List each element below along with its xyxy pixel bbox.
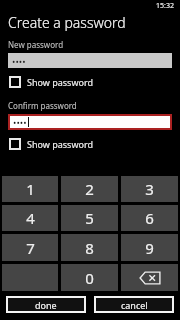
staticText: 15:32 <box>156 1 174 11</box>
staticText: 2 <box>85 179 94 199</box>
button[interactable]: 2 <box>61 176 118 202</box>
staticText: •••• <box>12 55 26 67</box>
staticText: 3 <box>145 179 154 199</box>
staticText: Show password <box>27 76 93 88</box>
button[interactable]: 9 <box>121 234 178 261</box>
staticText: 5 <box>85 208 94 228</box>
button[interactable]: 6 <box>121 205 178 231</box>
staticText: 4 <box>26 208 35 228</box>
button[interactable]: Backspace <box>121 264 178 291</box>
button[interactable]: 8 <box>61 234 118 261</box>
button[interactable]: 5 <box>61 205 118 231</box>
button[interactable]: Show password <box>0 134 180 154</box>
staticText: done <box>35 299 57 311</box>
button[interactable]: 1 <box>2 176 58 202</box>
staticText: 1 <box>26 179 35 199</box>
staticText: New password <box>8 39 64 50</box>
staticText: Show password <box>27 138 93 150</box>
staticText: 8 <box>85 238 94 258</box>
button[interactable]: done <box>6 296 86 313</box>
staticText: Create a password <box>8 13 126 32</box>
button[interactable]: 4 <box>2 205 58 231</box>
staticText: 0 <box>85 268 94 288</box>
button[interactable]: Show password <box>0 72 180 92</box>
staticText: cancel <box>121 299 148 311</box>
button[interactable]: 3 <box>121 176 178 202</box>
button[interactable]: 7 <box>2 234 58 261</box>
staticText: Confirm password <box>8 100 77 111</box>
staticText: 7 <box>26 238 35 258</box>
button[interactable]: 0 <box>61 264 118 291</box>
staticText: 9 <box>145 238 154 258</box>
staticText: •••• <box>13 116 27 128</box>
button[interactable]: •••• <box>8 114 172 130</box>
button[interactable]: •••• <box>8 53 172 68</box>
button[interactable]: cancel <box>94 296 174 313</box>
staticText: 6 <box>145 208 154 228</box>
